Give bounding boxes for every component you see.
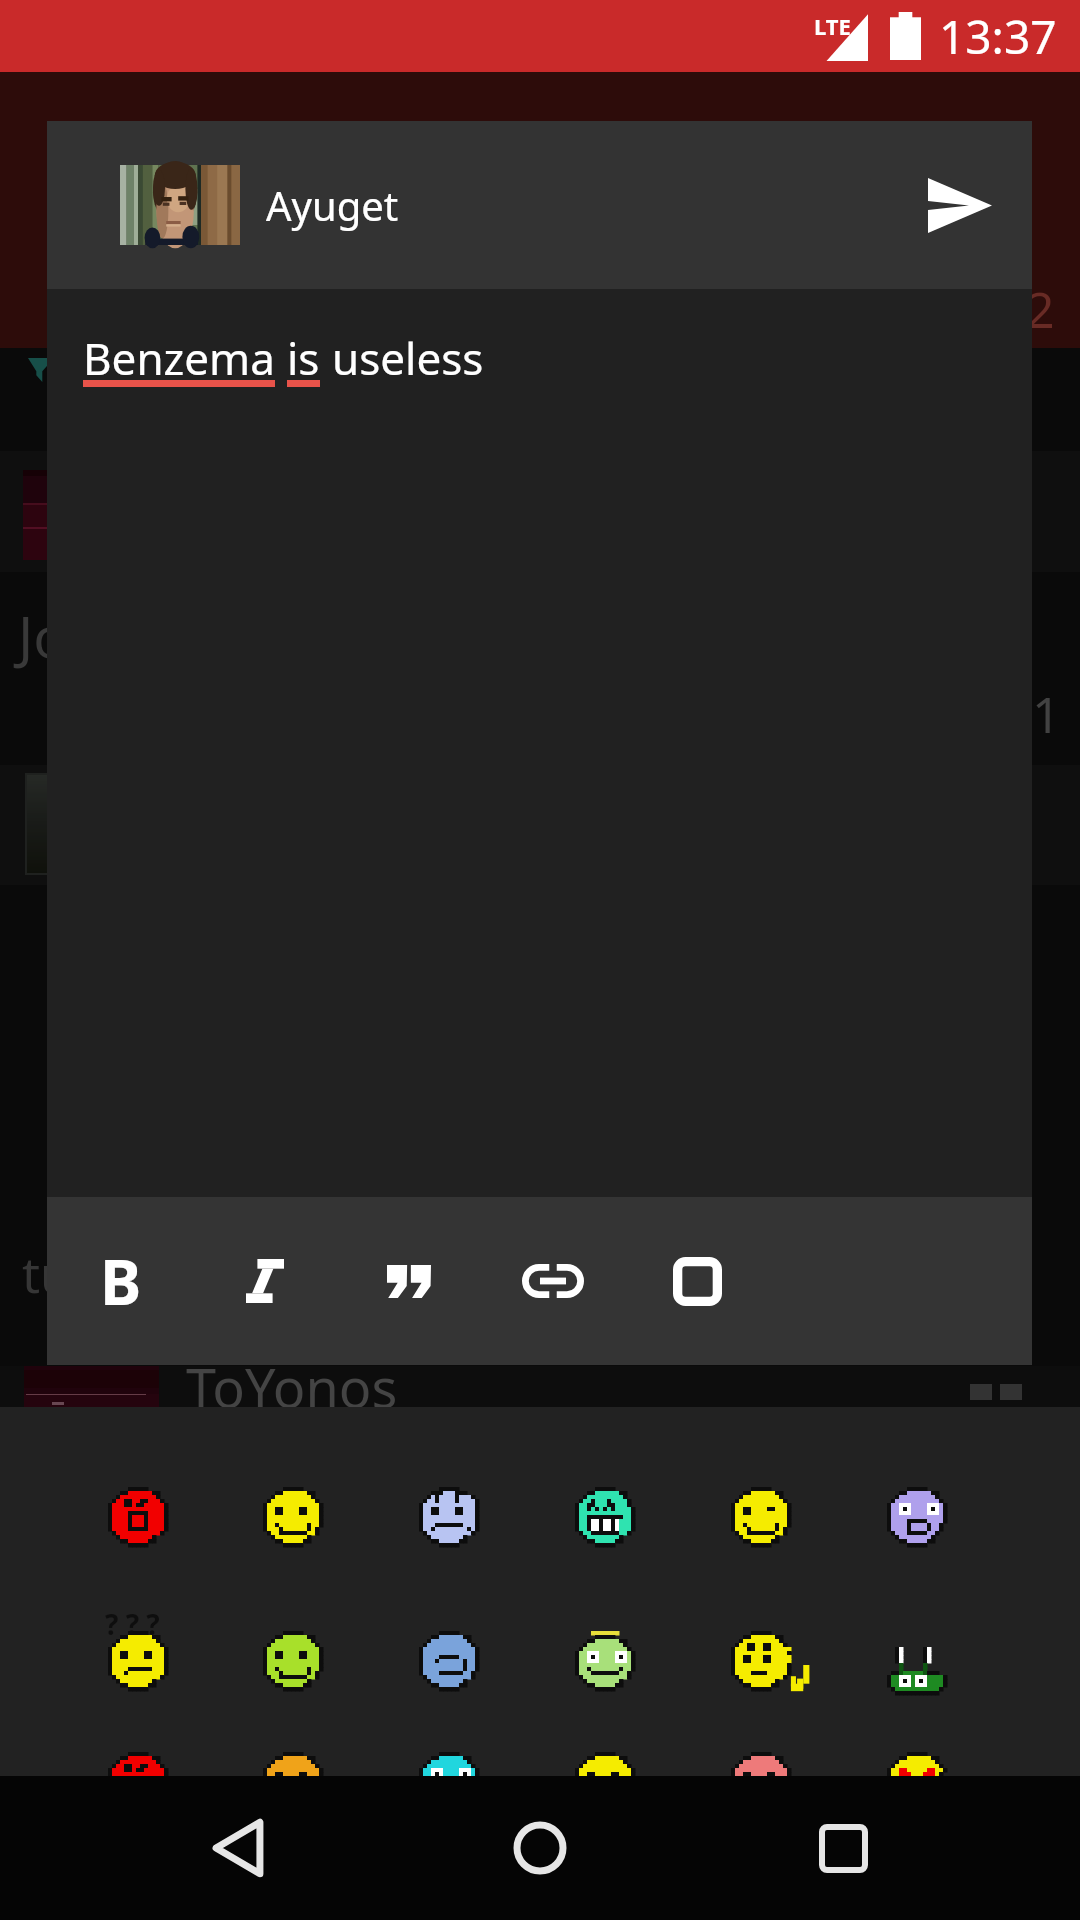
button[interactable]: Italic	[217, 1197, 313, 1365]
button[interactable]: Emoji	[731, 1752, 791, 1812]
button[interactable]: Ayuget	[47, 121, 888, 289]
button[interactable]: Emoji	[263, 1631, 323, 1691]
staticText: 1	[1032, 680, 1061, 748]
button[interactable]: Emoji	[263, 1487, 323, 1547]
button[interactable]: Home	[475, 1783, 605, 1913]
button[interactable]: Emoji	[419, 1631, 479, 1691]
button[interactable]: Emoji	[887, 1639, 947, 1699]
button[interactable]: Emoji	[731, 1487, 791, 1547]
staticText: LTE	[814, 11, 851, 41]
staticText: Benzema	[83, 328, 275, 388]
button[interactable]	[0, 765, 1080, 885]
button[interactable]: Emoji	[731, 1631, 791, 1691]
button[interactable]: Back	[173, 1783, 303, 1913]
staticText: 2	[1026, 275, 1055, 343]
button[interactable]: Emoji	[575, 1487, 635, 1547]
staticText: tu	[22, 1240, 71, 1308]
button[interactable]: Link	[505, 1197, 601, 1365]
button[interactable]: Emoji	[108, 1631, 168, 1691]
button[interactable]: Spoiler	[649, 1197, 745, 1365]
button[interactable]	[0, 451, 1080, 572]
staticText: ? ? ?	[105, 1605, 160, 1643]
button[interactable]	[0, 1366, 1080, 1408]
staticText: useless	[332, 328, 484, 388]
button[interactable]: Emoji	[108, 1487, 168, 1547]
staticText: Jo	[18, 598, 68, 674]
staticText: 13:37	[939, 5, 1057, 68]
button[interactable]: Emoji	[108, 1752, 168, 1812]
staticText: B	[100, 1239, 142, 1323]
button[interactable]: Emoji	[419, 1752, 479, 1812]
button[interactable]: Emoji	[887, 1752, 947, 1812]
staticText: is	[287, 328, 320, 388]
button[interactable]: tu	[0, 885, 1080, 1375]
button[interactable]: Quote	[361, 1197, 457, 1365]
button[interactable]: Emoji	[263, 1752, 323, 1812]
staticText: ToYonos	[186, 1350, 398, 1407]
button[interactable]: Emoji	[419, 1487, 479, 1547]
staticText: Ayuget	[266, 178, 399, 232]
button[interactable]	[0, 348, 1080, 452]
button[interactable]: Bold	[73, 1197, 169, 1365]
button[interactable]: Send	[888, 121, 1032, 289]
button[interactable]: Emoji	[575, 1631, 635, 1691]
button[interactable]: Jo	[0, 572, 1080, 765]
button[interactable]: Emoji	[887, 1487, 947, 1547]
button[interactable]: Recents	[778, 1783, 908, 1913]
button[interactable]: Emoji	[575, 1752, 635, 1812]
